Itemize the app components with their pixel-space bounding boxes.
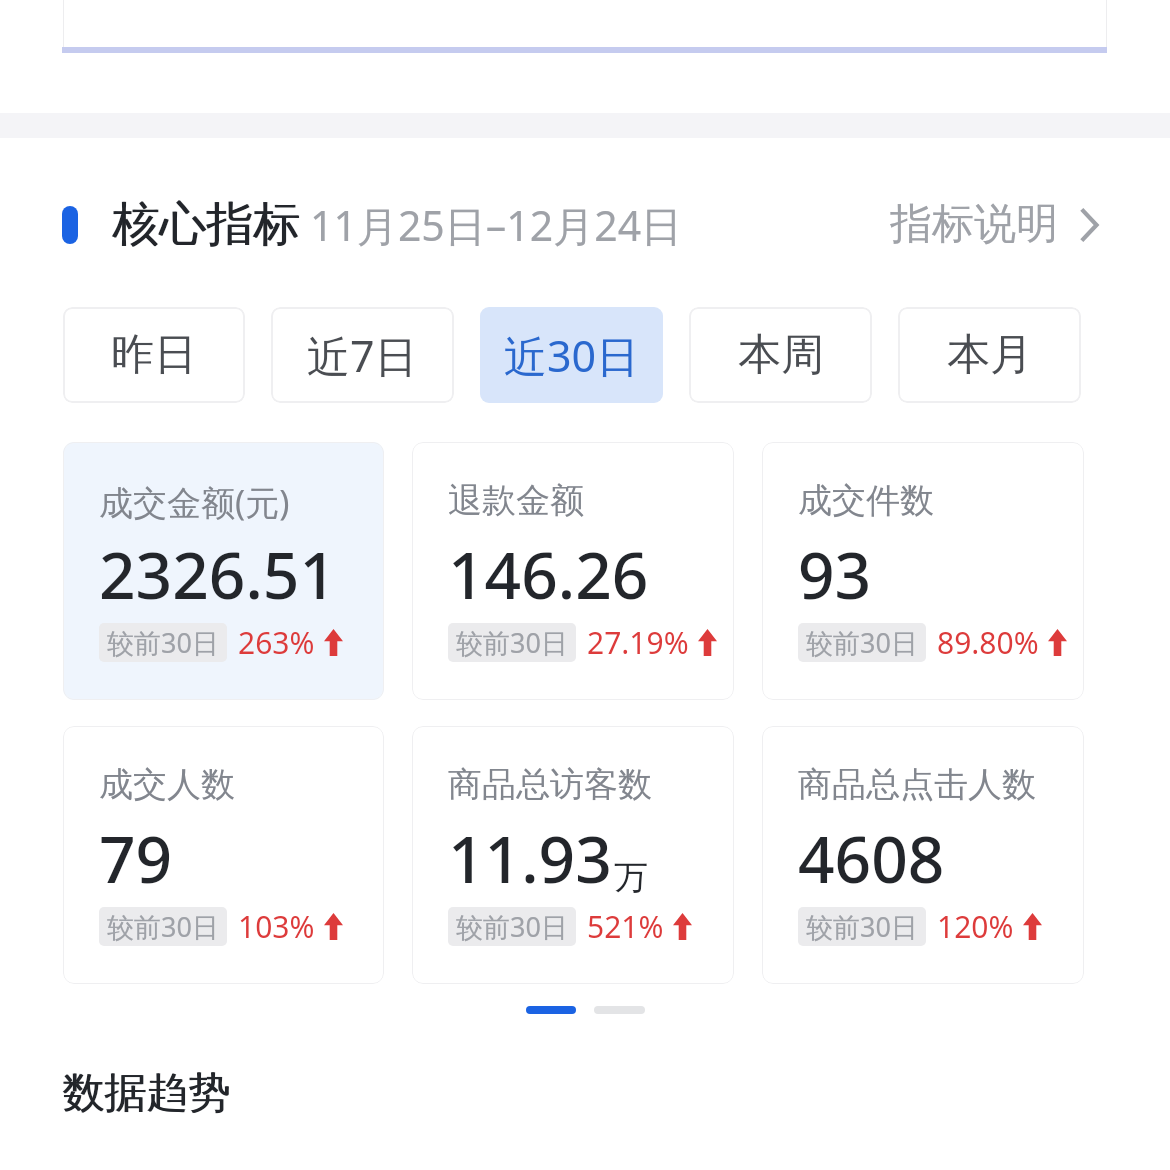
staticText: 商品总访客数 xyxy=(448,763,652,806)
staticText: 较前30日 xyxy=(456,908,568,945)
button[interactable]: 商品总访客数 xyxy=(412,726,734,984)
staticText: 103% xyxy=(238,906,315,947)
staticText: 成交件数 xyxy=(798,479,934,522)
staticText: 521% xyxy=(587,906,664,947)
button[interactable]: 成交件数 xyxy=(762,442,1084,700)
staticText: 指标说明 xyxy=(890,198,1058,251)
staticText: 万 xyxy=(614,856,648,899)
staticText: 4608 xyxy=(798,815,945,902)
staticText: 93 xyxy=(798,531,872,618)
staticText: 近7日 xyxy=(307,326,418,385)
staticText: 较前30日 xyxy=(806,624,918,661)
staticText: 成交人数 xyxy=(99,763,235,806)
staticText: 146.26 xyxy=(448,531,649,618)
staticText: 27.19% xyxy=(587,622,689,663)
staticText: 263% xyxy=(238,622,315,663)
staticText: 120% xyxy=(937,906,1014,947)
staticText: 核心指标 xyxy=(113,195,301,254)
staticText: 退款金额 xyxy=(448,479,584,522)
button[interactable]: 商品总点击人数 xyxy=(762,726,1084,984)
staticText: 数据趋势 xyxy=(63,1067,231,1120)
button[interactable]: 昨日 xyxy=(63,307,245,403)
staticText: 核心指标 xyxy=(112,195,300,254)
staticText: 昨日 xyxy=(111,328,197,382)
staticText: 数据趋势 xyxy=(62,1067,230,1120)
staticText: 较前30日 xyxy=(107,624,219,661)
staticText: 较前30日 xyxy=(806,908,918,945)
staticText: 11.93 xyxy=(448,815,612,902)
staticText: 成交金额(元) xyxy=(99,479,290,525)
staticText: 较前30日 xyxy=(107,908,219,945)
button[interactable]: 成交金额(元) xyxy=(63,442,384,700)
staticText: 商品总点击人数 xyxy=(798,763,1036,806)
staticText: 79 xyxy=(99,815,173,902)
staticText: 近30日 xyxy=(504,326,640,385)
staticText: 本月 xyxy=(947,328,1033,382)
button[interactable]: 近7日 xyxy=(271,307,454,403)
button[interactable]: 本周 xyxy=(689,307,872,403)
button[interactable]: 近30日 xyxy=(480,307,663,403)
staticText: 2326.51 xyxy=(99,531,337,618)
button[interactable]: 本月 xyxy=(898,307,1081,403)
button[interactable]: 指标说明 xyxy=(890,198,1098,251)
button[interactable]: 退款金额 xyxy=(412,442,734,700)
staticText: 11月25日–12月24日 xyxy=(310,197,683,253)
staticText: 较前30日 xyxy=(456,624,568,661)
staticText: 89.80% xyxy=(937,622,1039,663)
button[interactable]: 成交人数 xyxy=(63,726,384,984)
staticText: 本周 xyxy=(738,328,824,382)
other: Metric description xyxy=(1080,208,1098,242)
